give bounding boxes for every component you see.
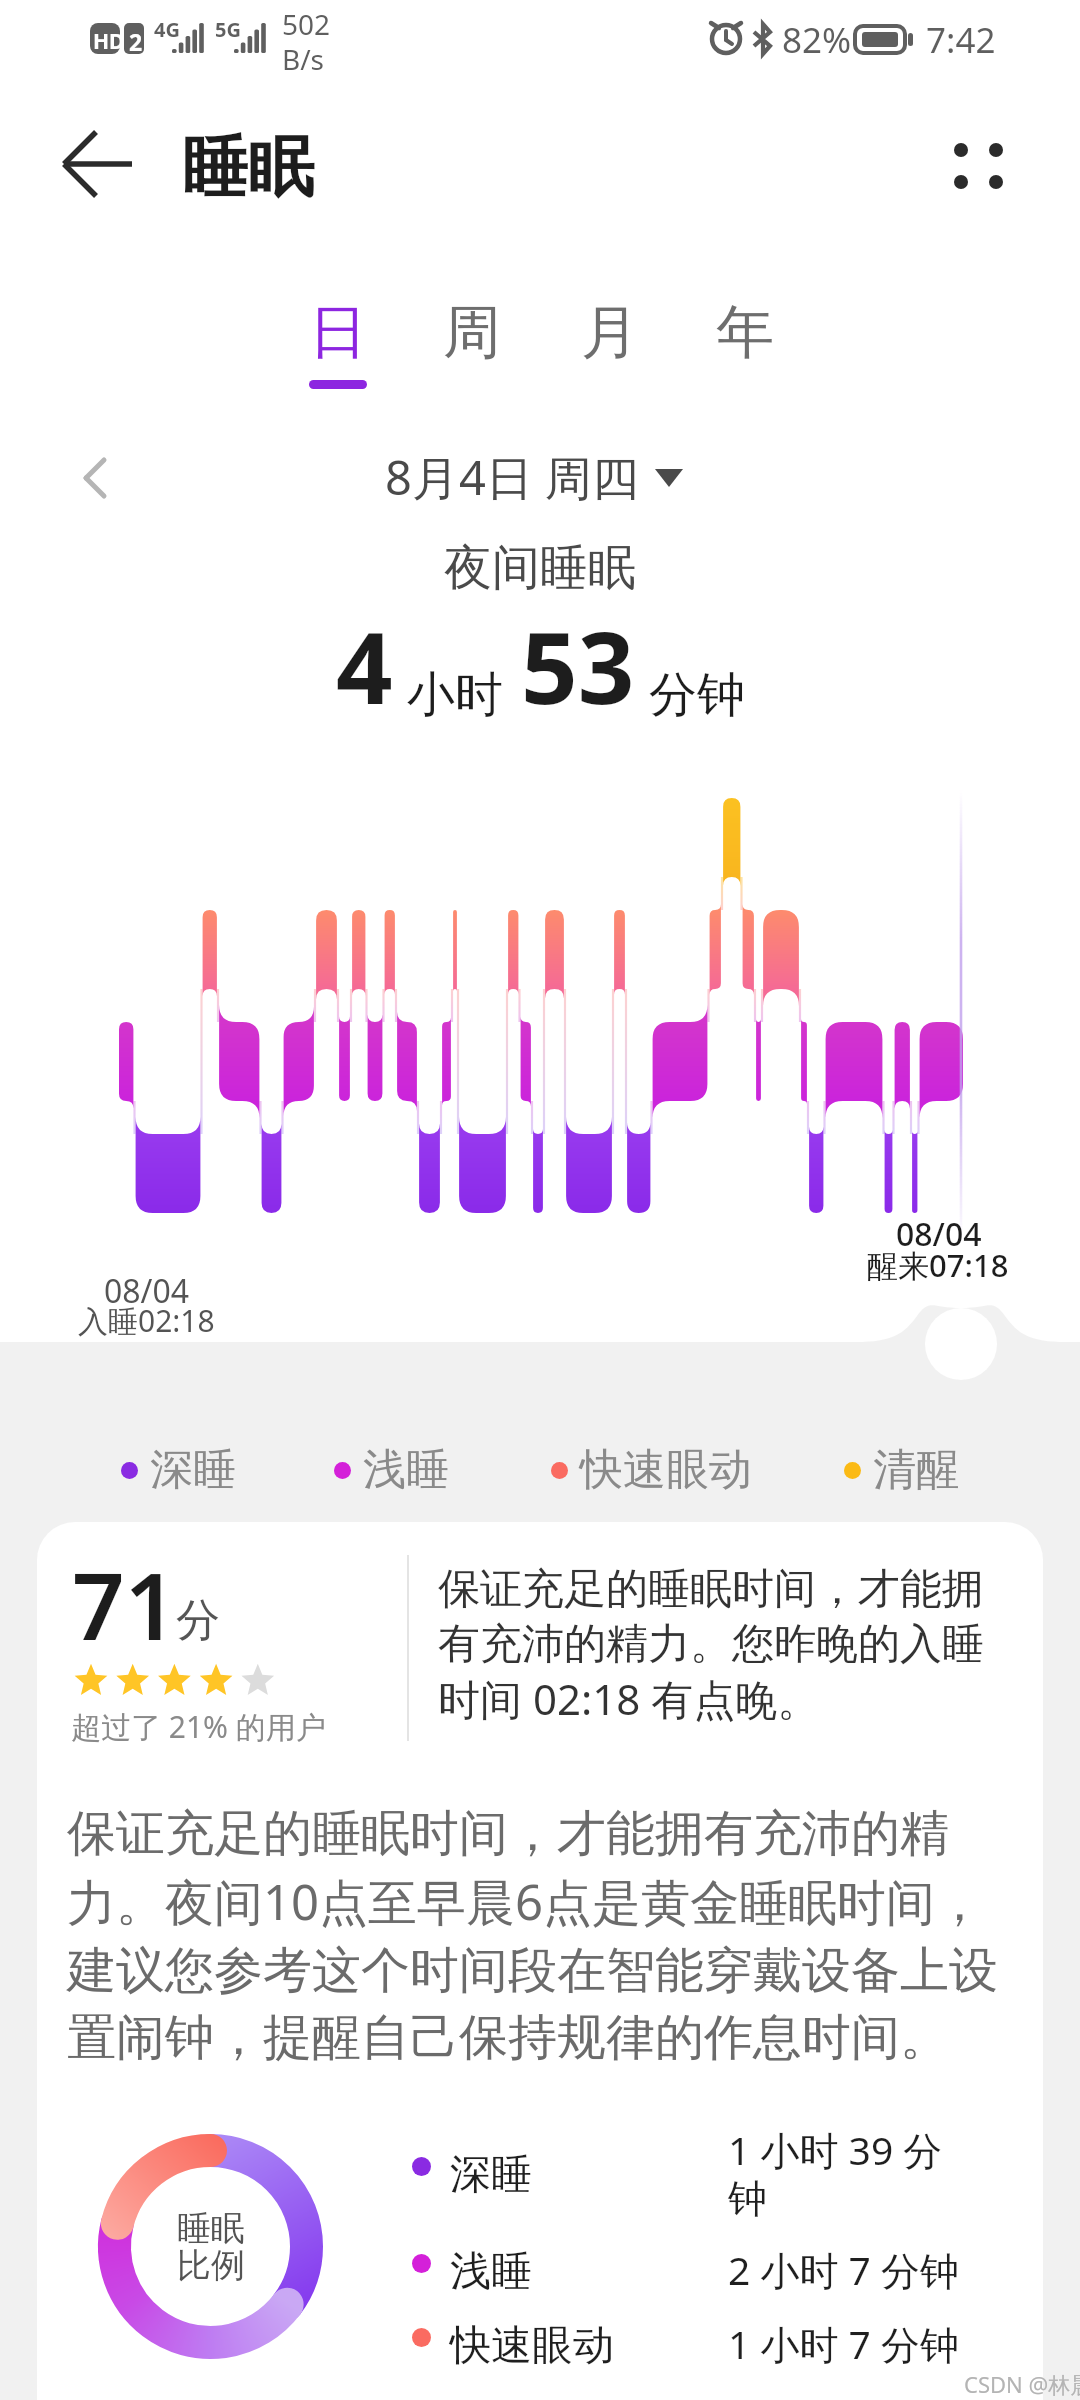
staticText: 保证充足的睡眠时间，才能拥有充沛的精 力。夜间10点至早晨6点是黄金睡眠时间， … [67,1803,998,2069]
staticText: 夜间睡眠 [0,538,1080,598]
staticText: 睡眠 比例 [177,2207,245,2287]
button[interactable]: 返回 [58,126,134,202]
staticText: 08/04 [896,1212,982,1256]
staticText: 5G [215,16,241,43]
staticText: 周 [443,296,501,369]
staticText: 快速眼动 [450,2320,614,2372]
staticText: B/s [282,40,325,78]
staticText: 月 [581,296,639,369]
button[interactable]: 更多 [944,126,1022,204]
button[interactable]: 日 [294,296,382,389]
button[interactable]: 清醒 [844,1443,959,1497]
staticText: 入睡02:18 [78,1300,215,1341]
staticText: 1 小时 7 分钟 [728,2317,960,2370]
staticText: 71 [72,1542,178,1667]
button[interactable]: 浅睡 [334,1443,449,1497]
button[interactable]: 上一天 [70,450,126,506]
staticText: 502 [282,5,331,43]
staticText: 4 [336,598,393,733]
staticText: 53 [521,598,635,733]
button[interactable]: 快速眼动 [551,1443,752,1497]
staticText: 睡眠 [182,126,314,209]
staticText: 醒来07:18 [867,1244,1009,1286]
staticText: 深睡 [450,2149,532,2201]
button[interactable]: 月 [566,296,654,369]
staticText: 浅睡 [363,1443,449,1497]
staticText: 深睡 [150,1443,236,1497]
button[interactable]: 年 [701,296,789,369]
staticText: 清醒 [873,1443,959,1497]
staticText: 1 小时 39 分 钟 [728,2123,943,2224]
staticText: CSDN @林晨南 [964,2369,1080,2399]
button[interactable]: 周 [428,296,516,369]
staticText: 2 小时 7 分钟 [728,2243,960,2296]
staticText: 7:42 [926,16,996,64]
staticText: 分 [176,1593,220,1648]
staticText: 2 [129,26,143,57]
button[interactable]: 8月4日 周四 [385,445,683,509]
staticText: 8月4日 周四 [385,445,639,509]
staticText: 分钟 [649,665,745,725]
staticText: 快速眼动 [580,1443,752,1497]
button[interactable]: 深睡 [121,1443,236,1497]
staticText: 浅睡 [450,2246,532,2298]
staticText: 4G [154,16,180,43]
staticText: 小时 [407,665,503,725]
staticText: 08/04 [104,1269,190,1313]
staticText: 年 [716,296,774,369]
staticText: 82% [782,16,852,64]
staticText: 保证充足的睡眠时间，才能拥 有充沛的精力。您昨晚的入睡 时间 02:18 有点晚… [438,1563,984,1728]
staticText: 日 [309,296,367,369]
staticText: 超过了 21% 的用户 [71,1706,326,1747]
staticText: HD [93,27,125,56]
